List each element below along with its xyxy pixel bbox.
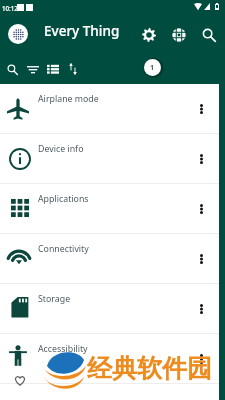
button[interactable]: Airplane mode xyxy=(0,84,225,133)
button[interactable]: Settings xyxy=(135,21,163,49)
staticText: Accessibility xyxy=(38,343,88,355)
button[interactable]: Favorites xyxy=(0,384,225,400)
button[interactable]: Selected filter count 1 xyxy=(144,59,161,76)
staticText: Applications xyxy=(38,193,89,205)
staticText: 经典软件园 xyxy=(87,353,212,384)
button[interactable]: Search xyxy=(195,21,223,49)
button[interactable]: Search list xyxy=(0,54,25,84)
button[interactable]: App icon xyxy=(8,24,28,44)
button[interactable]: Grid view xyxy=(40,54,66,84)
button[interactable]: Connectivity xyxy=(0,234,225,283)
button[interactable]: More options xyxy=(190,339,212,379)
staticText: Every Thing xyxy=(44,22,120,40)
staticText: Airplane mode xyxy=(38,93,99,105)
button[interactable]: More options xyxy=(190,189,212,229)
staticText: 1 xyxy=(150,63,155,73)
button[interactable]: Applications xyxy=(0,184,225,233)
button[interactable]: Device info xyxy=(0,134,225,183)
staticText: Device info xyxy=(38,143,84,155)
button[interactable]: Storage xyxy=(0,284,225,333)
button[interactable]: More options xyxy=(190,239,212,279)
button[interactable]: More options xyxy=(190,289,212,329)
staticText: Connectivity xyxy=(38,243,89,255)
button[interactable]: More options xyxy=(190,89,212,129)
button[interactable]: Sort xyxy=(60,54,86,84)
button[interactable]: More options xyxy=(190,139,212,179)
staticText: 10:12 xyxy=(2,4,18,12)
button[interactable]: Language xyxy=(165,21,193,49)
button[interactable]: Accessibility xyxy=(0,334,225,383)
staticText: Storage xyxy=(38,293,71,305)
button[interactable]: Filter xyxy=(20,54,46,84)
other: Favorites xyxy=(11,373,29,389)
